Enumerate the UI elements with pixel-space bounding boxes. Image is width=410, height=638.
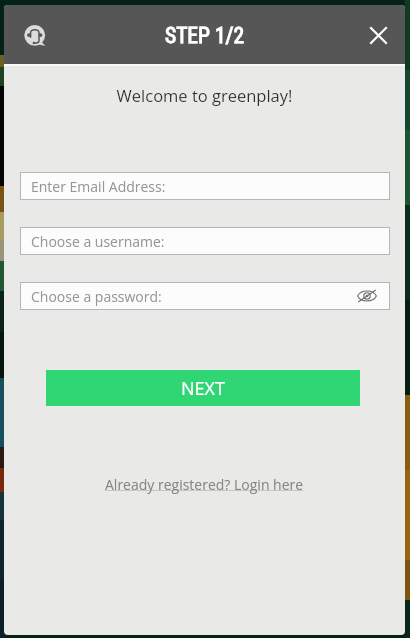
button[interactable]: Show password bbox=[355, 284, 379, 308]
button[interactable]: Enter Email Address: bbox=[20, 172, 390, 200]
staticText: NEXT bbox=[181, 376, 225, 401]
button[interactable]: Already registered? Login here bbox=[105, 475, 304, 494]
staticText: Choose a username: bbox=[31, 232, 165, 251]
button[interactable]: Choose a username: bbox=[20, 227, 390, 255]
button[interactable]: Support chat bbox=[12, 13, 54, 55]
staticText: STEP 1/2 bbox=[165, 23, 245, 48]
button[interactable]: Close bbox=[359, 16, 397, 54]
staticText: Enter Email Address: bbox=[31, 177, 166, 196]
button[interactable]: Choose a password: bbox=[20, 282, 390, 310]
staticText: Welcome to greenplay! bbox=[4, 84, 405, 106]
staticText: Choose a password: bbox=[31, 287, 162, 306]
button[interactable]: NEXT bbox=[46, 370, 360, 406]
